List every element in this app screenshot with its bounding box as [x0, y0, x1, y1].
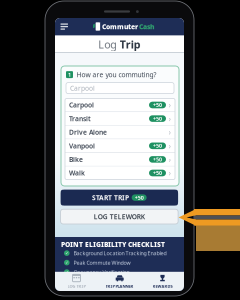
staticText: › — [168, 100, 170, 110]
staticText: LOG TELEWORK — [94, 212, 145, 221]
staticText: LOG TRIP — [67, 283, 85, 289]
staticText: +50 — [135, 194, 144, 201]
staticText: › — [168, 154, 170, 165]
staticText: Walk — [69, 169, 85, 177]
staticText: POINT ELIGIBILITY CHECKLIST — [61, 240, 165, 249]
button[interactable]: LOG TELEWORK — [61, 209, 178, 224]
staticText: +50 — [153, 101, 162, 109]
button[interactable]: Vanpool — [65, 139, 175, 152]
staticText: Trip — [120, 37, 141, 51]
staticText: +50 — [153, 142, 162, 149]
button[interactable]: Carpool — [66, 83, 174, 94]
staticText: Carpool — [70, 84, 95, 93]
button[interactable]: REWARDS — [141, 272, 184, 291]
button[interactable]: Drive Alone — [65, 126, 175, 139]
staticText: +50 — [153, 169, 162, 177]
staticText: › — [168, 168, 170, 178]
staticText: › — [168, 140, 170, 151]
staticText: 1 — [68, 71, 71, 78]
staticText: ✓ — [65, 251, 68, 255]
staticText: +50 — [153, 156, 162, 163]
staticText: Drive Alone — [69, 128, 107, 137]
button[interactable]: Walk — [65, 166, 175, 179]
staticText: Occupancy Verification — [74, 268, 130, 276]
staticText: › — [168, 113, 170, 124]
staticText: How are you commuting? — [77, 70, 157, 79]
staticText: Log — [98, 37, 117, 51]
staticText: ✓ — [65, 270, 68, 274]
staticText: Carpool — [69, 101, 94, 109]
staticText: › — [168, 127, 170, 137]
staticText: Commuter — [102, 22, 138, 31]
button[interactable]: Bike — [65, 153, 175, 166]
button[interactable]: Menu — [55, 18, 73, 36]
staticText: TRIP PLANNER — [105, 283, 133, 289]
staticText: Peak Commute Window — [74, 259, 131, 266]
button[interactable]: TRIP PLANNER — [98, 272, 141, 291]
staticText: Bike — [69, 155, 83, 164]
staticText: Transit — [69, 114, 91, 123]
staticText: Cash — [139, 22, 154, 31]
button[interactable]: START TRIP — [61, 190, 178, 206]
staticText: Vanpool — [69, 141, 95, 150]
staticText: REWARDS — [152, 283, 172, 289]
button[interactable]: LOG TRIP — [55, 272, 98, 291]
button[interactable]: Carpool — [65, 98, 175, 111]
button[interactable]: Transit — [65, 112, 175, 125]
staticText: ✓ — [65, 260, 68, 265]
staticText: Background Location Tracking Enabled — [74, 250, 167, 257]
staticText: START TRIP — [92, 193, 129, 202]
staticText: +50 — [153, 115, 162, 122]
